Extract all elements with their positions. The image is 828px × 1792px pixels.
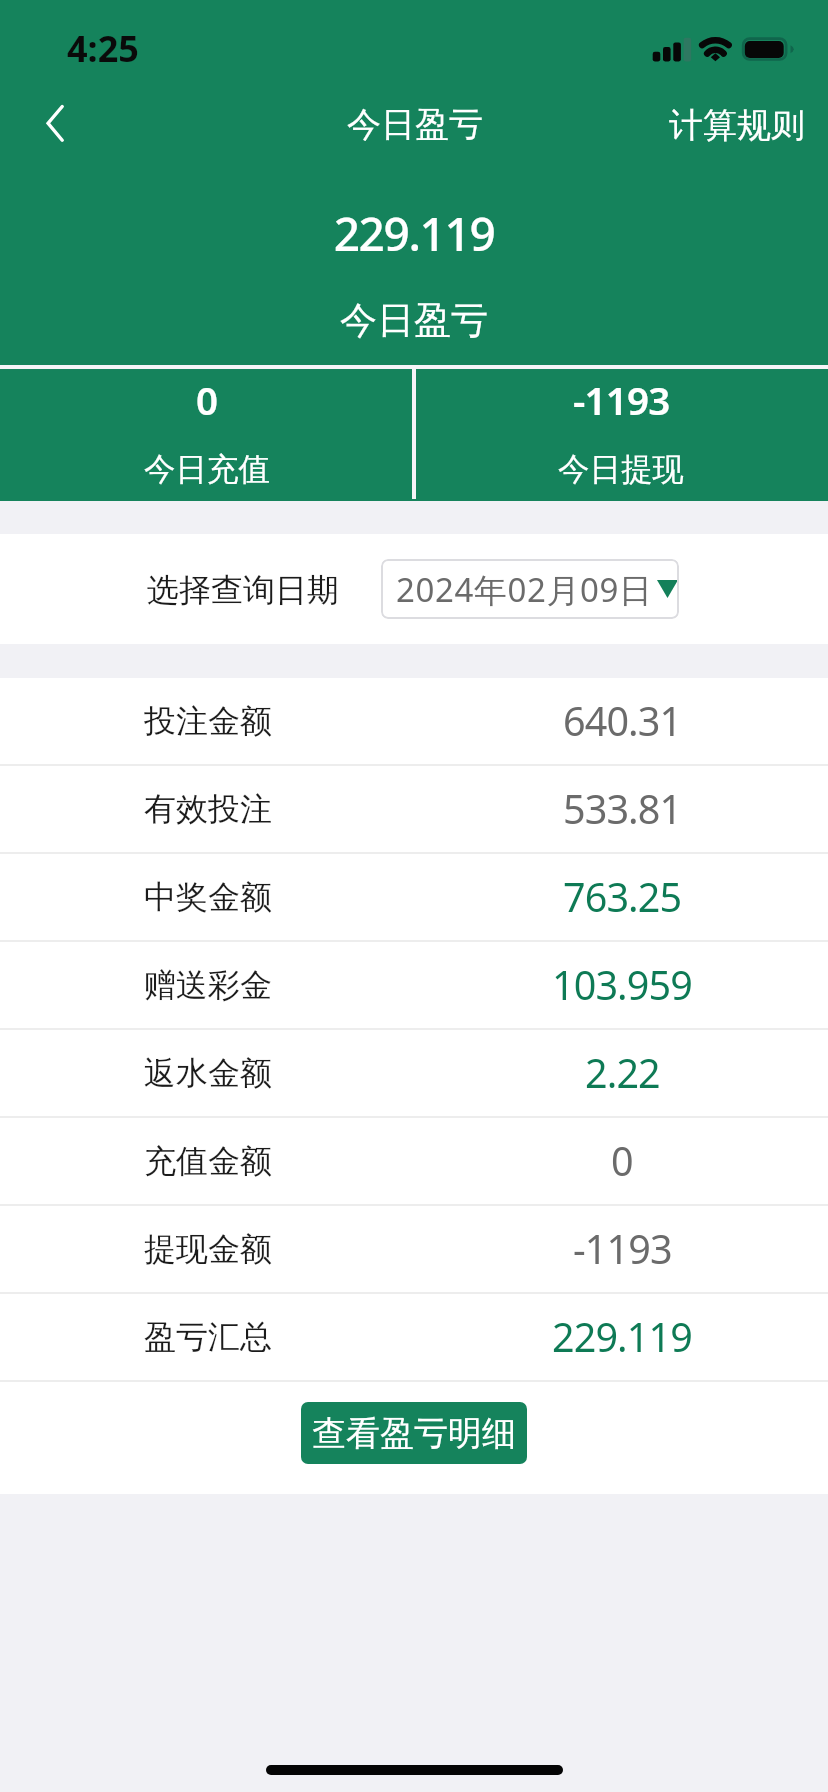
staticText: 今日提现 <box>558 450 684 490</box>
staticText: 0 <box>196 374 218 426</box>
button[interactable]: 提现金额 <box>0 1206 828 1292</box>
button[interactable]: 2024年02月09日 <box>381 559 679 619</box>
staticText: 533.81 <box>563 782 682 836</box>
staticText: 有效投注 <box>144 789 272 829</box>
button[interactable]: 返水金额 <box>0 1030 828 1116</box>
button[interactable]: Back <box>28 99 76 147</box>
staticText: 640.31 <box>563 694 682 748</box>
staticText: 229.119 <box>0 202 828 265</box>
button[interactable]: 查看盈亏明细 <box>301 1402 527 1464</box>
button[interactable]: 中奖金额 <box>0 854 828 940</box>
staticText: 充值金额 <box>144 1141 272 1181</box>
staticText: 今日盈亏 <box>347 103 483 146</box>
staticText: 763.25 <box>563 870 682 924</box>
button[interactable]: -1193 <box>414 367 828 497</box>
staticText: 2024年02月09日 <box>396 567 653 612</box>
staticText: 提现金额 <box>144 1229 272 1269</box>
staticText: 今日充值 <box>144 450 270 490</box>
button[interactable]: 充值金额 <box>0 1118 828 1204</box>
button[interactable]: 0 <box>0 367 414 497</box>
staticText: 103.959 <box>552 958 692 1012</box>
staticText: 中奖金额 <box>144 877 272 917</box>
staticText: 赠送彩金 <box>144 965 272 1005</box>
button[interactable]: 投注金额 <box>0 678 828 764</box>
button[interactable]: 有效投注 <box>0 766 828 852</box>
staticText: 计算规则 <box>669 104 805 147</box>
staticText: 4:25 <box>67 24 139 73</box>
staticText: 盈亏汇总 <box>144 1317 272 1357</box>
staticText: 今日盈亏 <box>0 297 828 344</box>
staticText: -1193 <box>573 1222 672 1276</box>
button[interactable]: 赠送彩金 <box>0 942 828 1028</box>
staticText: 选择查询日期 <box>147 570 339 610</box>
staticText: 2.22 <box>585 1046 660 1100</box>
button[interactable]: 盈亏汇总 <box>0 1294 828 1380</box>
staticText: 返水金额 <box>144 1053 272 1093</box>
staticText: 投注金额 <box>144 701 272 741</box>
staticText: 0 <box>611 1134 633 1188</box>
staticText: 查看盈亏明细 <box>312 1412 516 1455</box>
staticText: -1193 <box>573 374 670 426</box>
button[interactable]: 计算规则 <box>655 95 819 156</box>
staticText: 229.119 <box>552 1310 692 1364</box>
